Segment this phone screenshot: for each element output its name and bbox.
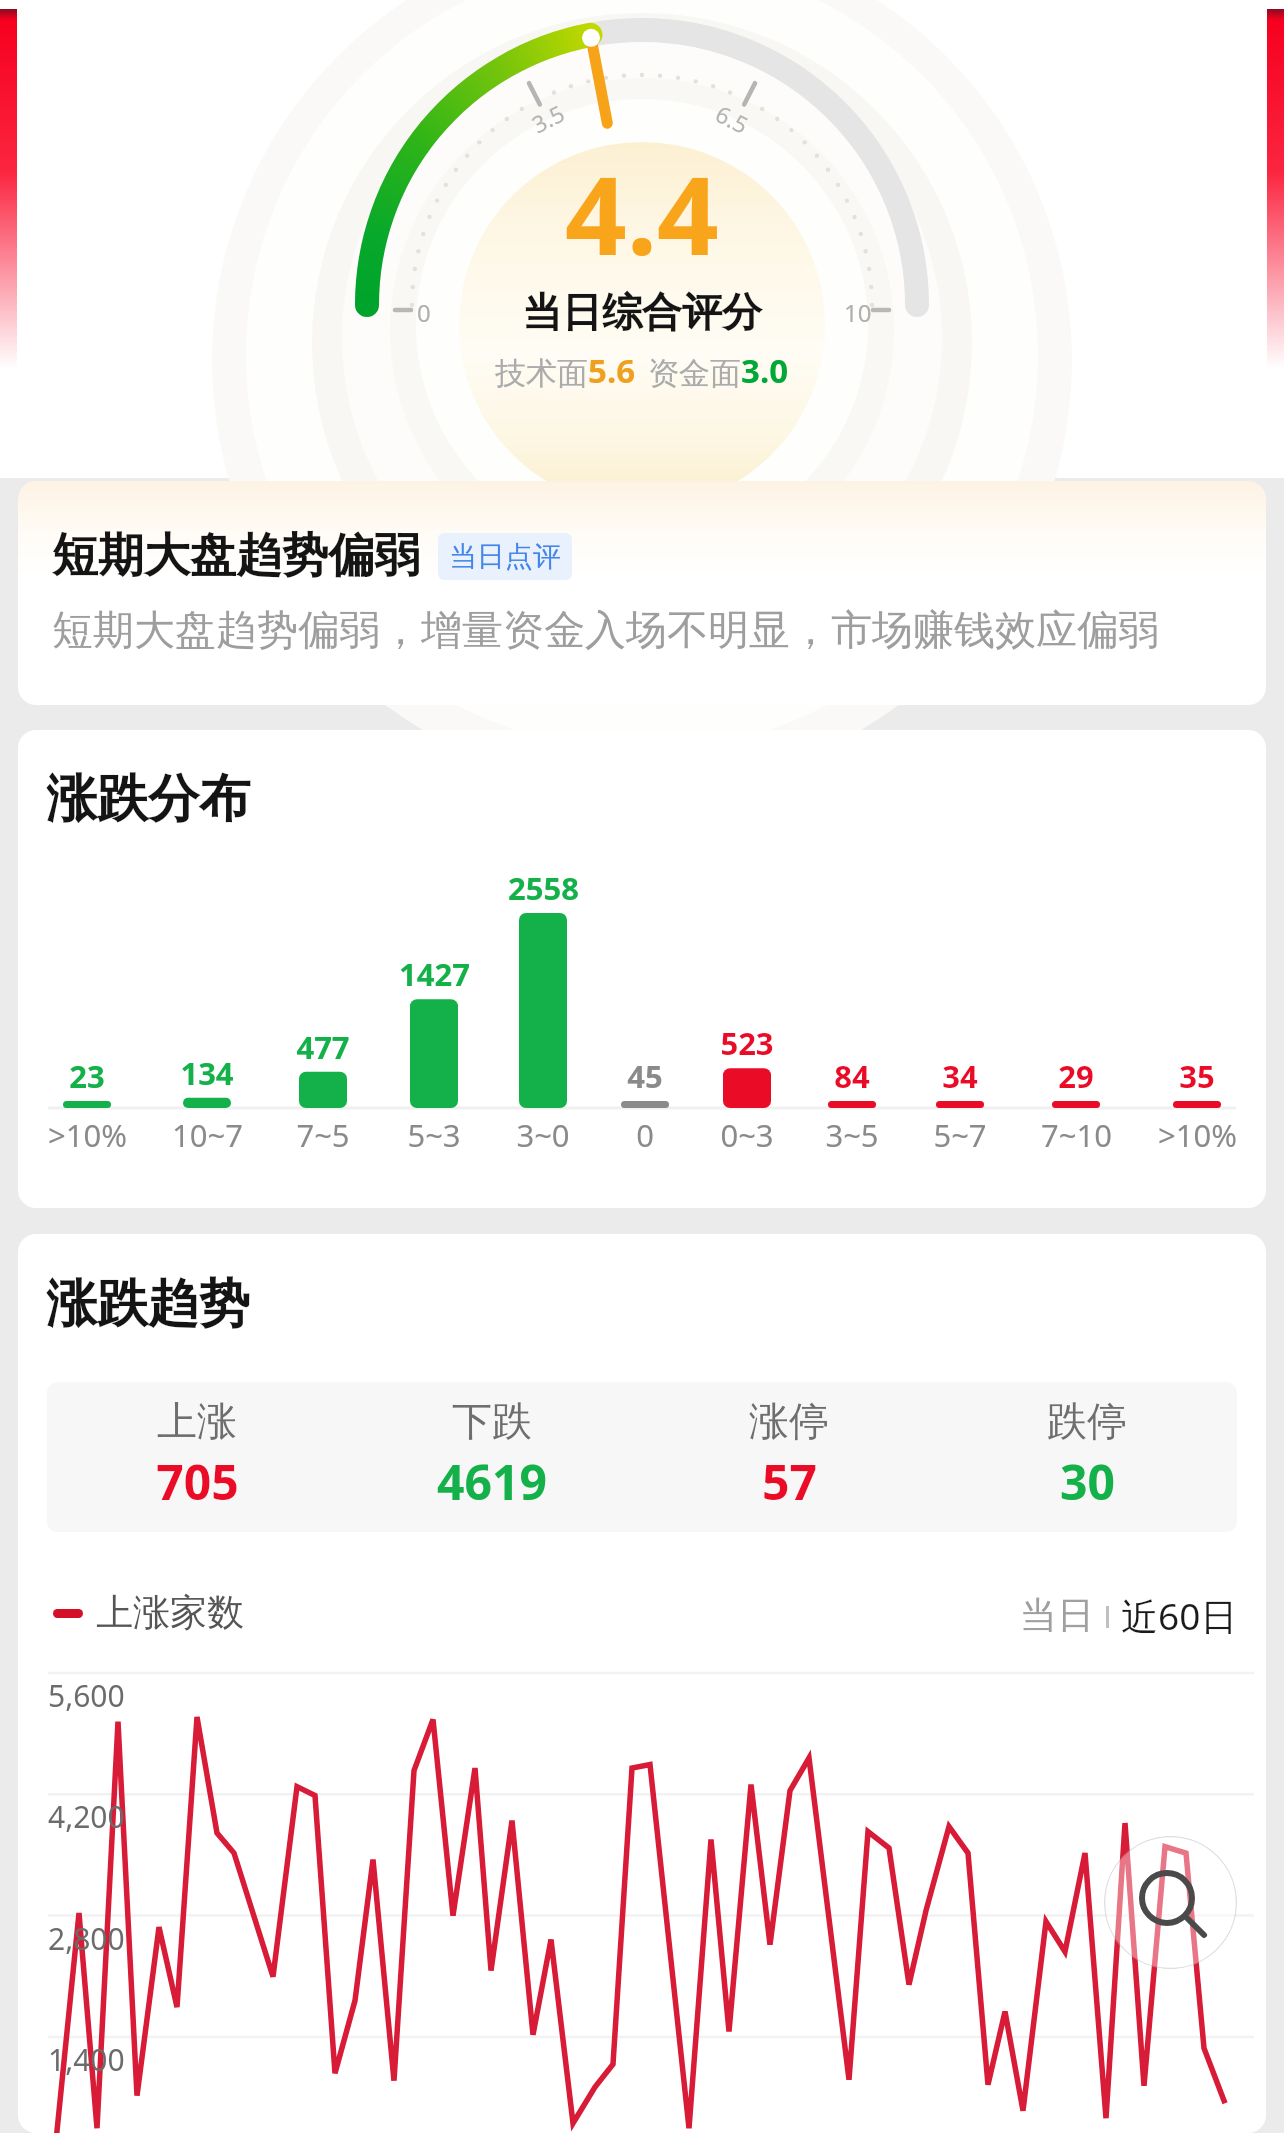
button[interactable]: 当日: [1020, 1592, 1094, 1639]
staticText: 5,600: [48, 1675, 125, 1716]
staticText: 技术面: [495, 354, 588, 393]
staticText: 0: [636, 1114, 654, 1156]
staticText: 23: [69, 1055, 105, 1097]
staticText: 涨跌分布: [46, 767, 250, 831]
staticText: 跌停: [1047, 1396, 1127, 1446]
staticText: 523: [720, 1022, 774, 1064]
staticText: 2,800: [48, 1918, 125, 1959]
staticText: 当日综合评分: [522, 287, 762, 337]
staticText: 涨停: [749, 1396, 829, 1446]
staticText: 1,400: [48, 2039, 125, 2080]
staticText: 30: [1060, 1449, 1115, 1514]
staticText: 4619: [437, 1449, 547, 1514]
button[interactable]: 近60日: [1121, 1590, 1238, 1641]
staticText: 3~5: [825, 1114, 879, 1156]
staticText: 35: [1179, 1055, 1215, 1097]
staticText: 5~3: [407, 1114, 461, 1156]
button[interactable]: Search: [1104, 1836, 1237, 1969]
staticText: 上涨: [157, 1396, 237, 1446]
staticText: 57: [762, 1449, 817, 1514]
staticText: 7~10: [1041, 1114, 1112, 1156]
staticText: 7~5: [296, 1114, 350, 1156]
staticText: 当日: [1020, 1592, 1094, 1639]
staticText: 近60日: [1121, 1590, 1238, 1641]
staticText: 4,200: [48, 1796, 125, 1837]
staticText: 3.5: [526, 97, 569, 139]
staticText: >10%: [1158, 1114, 1237, 1156]
staticText: 2558: [508, 867, 579, 909]
staticText: 资金面: [648, 354, 741, 393]
staticText: 84: [834, 1055, 870, 1097]
staticText: >10%: [48, 1114, 127, 1156]
staticText: 10: [844, 296, 872, 329]
staticText: 477: [296, 1026, 350, 1068]
staticText: 29: [1058, 1055, 1094, 1097]
staticText: 4.4: [565, 140, 719, 287]
staticText: 上涨家数: [96, 1589, 244, 1636]
staticText: 涨跌趋势: [46, 1272, 250, 1336]
staticText: 3.0: [741, 348, 789, 393]
staticText: 34: [942, 1055, 978, 1097]
staticText: 3~0: [516, 1114, 570, 1156]
staticText: 10~7: [172, 1114, 243, 1156]
staticText: 45: [627, 1055, 663, 1097]
button[interactable]: 短期大盘趋势偏弱: [18, 481, 1266, 705]
staticText: 当日点评: [449, 539, 561, 574]
staticText: 下跌: [452, 1396, 532, 1446]
staticText: 134: [180, 1052, 234, 1094]
staticText: 0: [417, 296, 431, 329]
staticText: 705: [156, 1449, 239, 1514]
staticText: 5~7: [933, 1114, 987, 1156]
staticText: 5.6: [588, 348, 636, 393]
staticText: 短期大盘趋势偏弱，增量资金入场不明显，市场赚钱效应偏弱: [52, 605, 1159, 657]
staticText: 1427: [399, 953, 470, 995]
staticText: 0~3: [720, 1114, 774, 1156]
staticText: 6.5: [710, 97, 754, 140]
staticText: 短期大盘趋势偏弱: [52, 527, 420, 585]
